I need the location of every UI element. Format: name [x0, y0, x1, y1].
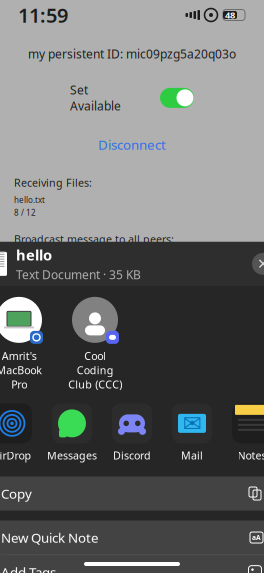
button[interactable]: Notes [226, 403, 264, 463]
button[interactable]: Amrit's MacBook Pro [0, 296, 48, 391]
button[interactable]: Add Tags [0, 555, 264, 573]
staticText: Mail [181, 448, 203, 463]
staticText: New Quick Note [1, 529, 99, 546]
staticText: AirDrop [0, 448, 31, 463]
button[interactable]: New Quick Note [0, 520, 264, 554]
staticText: Amrit's MacBook Pro [0, 349, 42, 391]
button[interactable]: ✉ [166, 403, 218, 463]
staticText: ✕ [257, 255, 264, 272]
staticText: aA [252, 533, 261, 542]
staticText: Cool Coding Club (CCC) [68, 349, 122, 391]
staticText: my persistent ID: mic09pzg5a20q03o [28, 46, 236, 62]
staticText: 11:59 [18, 2, 68, 28]
staticText: Broadcast message to all peers: [14, 232, 174, 246]
staticText: Send message with manual ID: [14, 284, 173, 298]
staticText: Notes [237, 448, 264, 463]
staticText: 48 [225, 9, 235, 21]
staticText: hello [16, 245, 52, 265]
staticText: Text Document · 35 KB [16, 267, 141, 282]
staticText: Receiving Files: [14, 175, 92, 190]
button[interactable]: Set Available [160, 88, 194, 108]
button[interactable]: Cool Coding Club (CCC) [66, 296, 124, 391]
staticText: Copy [1, 485, 32, 502]
staticText: Discord [113, 448, 151, 463]
button[interactable]: Copy [0, 476, 264, 510]
staticText: 8 / 12 [14, 207, 36, 218]
staticText: Add Tags [1, 563, 56, 573]
button[interactable]: AirDrop [0, 403, 38, 463]
staticText: hello.txt [14, 195, 45, 205]
button[interactable]: Disconnect [90, 132, 174, 157]
button[interactable]: Close [250, 251, 264, 277]
staticText: Disconnect [98, 136, 166, 153]
staticText: ✉ [182, 410, 201, 436]
staticText: Messages [47, 448, 97, 463]
button[interactable]: Messages [46, 403, 98, 463]
staticText: Set Available [70, 82, 121, 114]
button[interactable]: Discord [106, 403, 158, 463]
